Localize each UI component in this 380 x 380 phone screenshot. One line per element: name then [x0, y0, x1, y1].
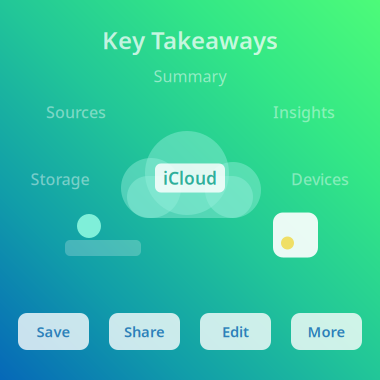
staticText: More	[307, 322, 345, 341]
staticText: Share	[124, 322, 165, 341]
button[interactable]: Storage	[28, 169, 92, 189]
button[interactable]: Edit	[200, 313, 271, 350]
button[interactable]: Save	[18, 313, 89, 350]
button[interactable]: Devices	[288, 169, 352, 189]
staticText: Edit	[222, 322, 249, 341]
staticText: Insights	[273, 101, 335, 123]
staticText: Storage	[30, 168, 89, 190]
staticText: Sources	[46, 101, 106, 123]
staticText: iCloud	[163, 166, 217, 189]
staticText: Key Takeaways	[102, 24, 278, 56]
button[interactable]: Sources	[44, 102, 108, 122]
staticText: Save	[36, 322, 70, 341]
button[interactable]: Account	[65, 214, 141, 256]
button[interactable]: More	[291, 313, 362, 350]
staticText: Summary	[153, 65, 226, 87]
button[interactable]: Share	[109, 313, 180, 350]
button[interactable]: Photos	[273, 212, 318, 257]
button[interactable]: Insights	[272, 102, 336, 122]
staticText: Devices	[291, 168, 349, 190]
